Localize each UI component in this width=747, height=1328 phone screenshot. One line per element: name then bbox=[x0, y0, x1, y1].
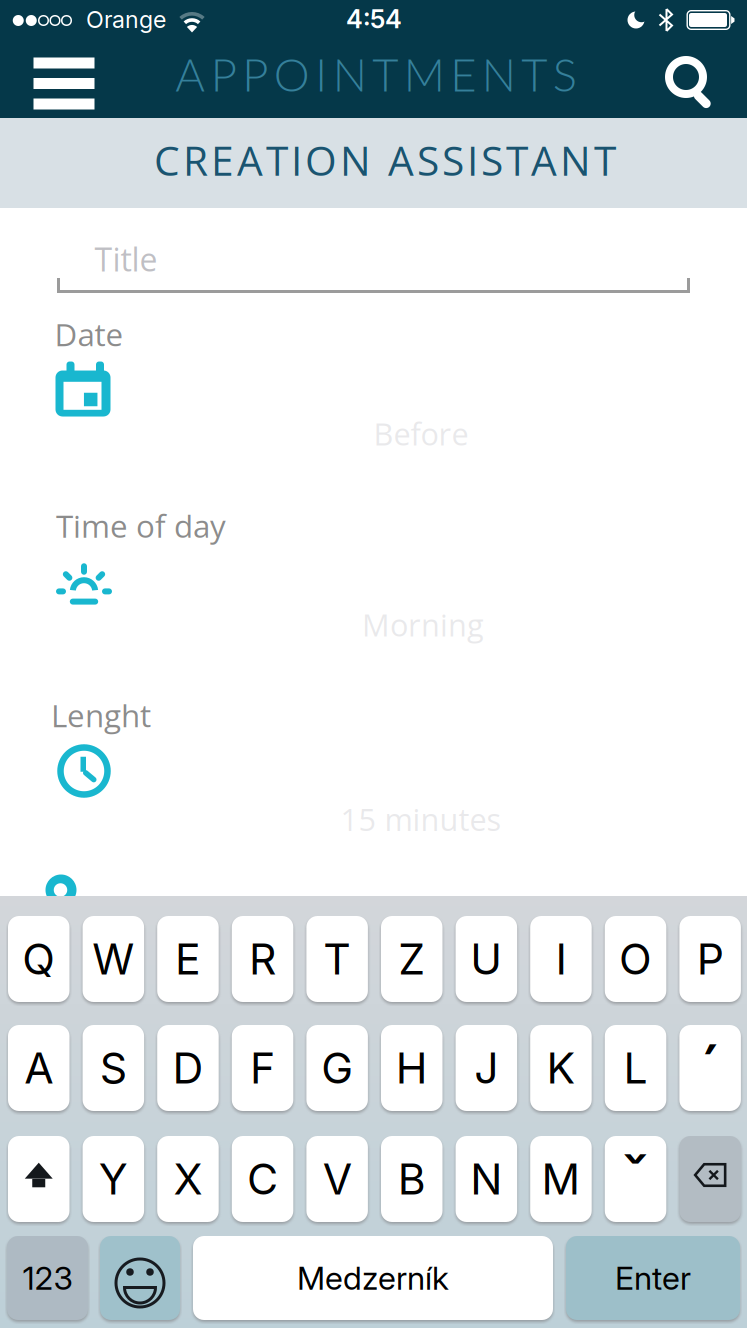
staticText: D bbox=[172, 1042, 203, 1094]
staticText: M bbox=[541, 1153, 580, 1205]
button[interactable]: B bbox=[381, 1136, 442, 1222]
button[interactable]: E bbox=[157, 916, 219, 1002]
button[interactable]: N bbox=[456, 1136, 517, 1222]
staticText: CREATION ASSISTANT bbox=[154, 132, 616, 188]
button[interactable]: A bbox=[8, 1025, 69, 1111]
button[interactable]: Q bbox=[8, 916, 69, 1002]
staticText: C bbox=[247, 1153, 278, 1205]
staticText: Morning bbox=[362, 604, 484, 645]
staticText: P bbox=[697, 933, 724, 985]
button[interactable]: 15 minutes bbox=[326, 797, 516, 841]
button[interactable]: S bbox=[83, 1025, 144, 1111]
button[interactable]: Emoji bbox=[100, 1236, 180, 1320]
button[interactable]: I bbox=[530, 916, 592, 1002]
staticText: O bbox=[619, 933, 652, 985]
button[interactable]: Enter bbox=[566, 1236, 740, 1320]
staticText: Title bbox=[94, 237, 157, 281]
button[interactable]: Pick date bbox=[50, 356, 116, 422]
button[interactable]: ˇ bbox=[605, 1136, 666, 1222]
button[interactable]: Title bbox=[57, 233, 690, 293]
staticText: ´ bbox=[699, 1030, 721, 1114]
staticText: Y bbox=[99, 1153, 128, 1205]
staticText: ˇ bbox=[621, 1140, 650, 1224]
button[interactable]: G bbox=[306, 1025, 368, 1111]
staticText: E bbox=[175, 933, 201, 985]
button[interactable]: K bbox=[530, 1025, 592, 1111]
staticText: W bbox=[92, 933, 134, 985]
button[interactable]: M bbox=[530, 1136, 592, 1222]
button[interactable]: Pick time of day bbox=[51, 547, 117, 609]
staticText: S bbox=[100, 1042, 127, 1094]
button[interactable]: R bbox=[232, 916, 293, 1002]
button[interactable]: 123 bbox=[7, 1236, 88, 1320]
button[interactable]: Pick length bbox=[53, 740, 115, 802]
button[interactable]: F bbox=[232, 1025, 293, 1111]
button[interactable]: Morning bbox=[348, 602, 498, 646]
staticText: H bbox=[396, 1042, 428, 1094]
staticText: X bbox=[173, 1153, 202, 1205]
button[interactable]: Search bbox=[650, 47, 726, 117]
button[interactable]: U bbox=[456, 916, 517, 1002]
button[interactable]: W bbox=[83, 916, 144, 1002]
staticText: N bbox=[470, 1153, 502, 1205]
staticText: G bbox=[321, 1042, 353, 1094]
staticText: K bbox=[546, 1042, 575, 1094]
button[interactable]: H bbox=[381, 1025, 442, 1111]
staticText: B bbox=[398, 1153, 426, 1205]
staticText: L bbox=[623, 1042, 647, 1094]
staticText: I bbox=[555, 933, 566, 985]
button[interactable]: T bbox=[306, 916, 368, 1002]
button[interactable]: J bbox=[456, 1025, 517, 1111]
staticText: J bbox=[474, 1042, 498, 1094]
staticText: APPOINTMENTS bbox=[175, 47, 577, 101]
button[interactable]: X bbox=[157, 1136, 219, 1222]
button[interactable]: L bbox=[605, 1025, 666, 1111]
staticText: 4:54 bbox=[346, 4, 402, 34]
staticText: Z bbox=[398, 933, 425, 985]
button[interactable]: Z bbox=[381, 916, 442, 1002]
staticText: Q bbox=[22, 933, 55, 985]
button[interactable]: ´ bbox=[679, 1025, 741, 1111]
staticText: A bbox=[24, 1042, 53, 1094]
button[interactable]: Medzerník bbox=[193, 1236, 553, 1320]
staticText: V bbox=[323, 1153, 352, 1205]
button[interactable]: V bbox=[306, 1136, 368, 1222]
staticText: Before bbox=[373, 413, 468, 454]
staticText: Orange bbox=[86, 5, 166, 34]
button[interactable]: C bbox=[232, 1136, 293, 1222]
staticText: Lenght bbox=[51, 694, 151, 736]
staticText: Time of day bbox=[56, 504, 226, 547]
staticText: 123 bbox=[22, 1259, 72, 1297]
button[interactable]: Before bbox=[351, 411, 491, 455]
button[interactable]: Delete bbox=[679, 1136, 741, 1222]
staticText: Enter bbox=[615, 1259, 691, 1297]
staticText: U bbox=[470, 933, 502, 985]
button[interactable]: P bbox=[679, 916, 741, 1002]
button[interactable]: Shift bbox=[8, 1136, 69, 1222]
button[interactable]: D bbox=[157, 1025, 219, 1111]
staticText: Date bbox=[54, 313, 123, 355]
staticText: F bbox=[250, 1042, 275, 1094]
button[interactable]: O bbox=[605, 916, 666, 1002]
button[interactable]: Y bbox=[83, 1136, 144, 1222]
staticText: Medzerník bbox=[297, 1259, 449, 1297]
staticText: R bbox=[249, 933, 276, 985]
staticText: 15 minutes bbox=[340, 798, 501, 840]
button[interactable]: Menu bbox=[19, 47, 109, 119]
staticText: T bbox=[323, 933, 351, 985]
